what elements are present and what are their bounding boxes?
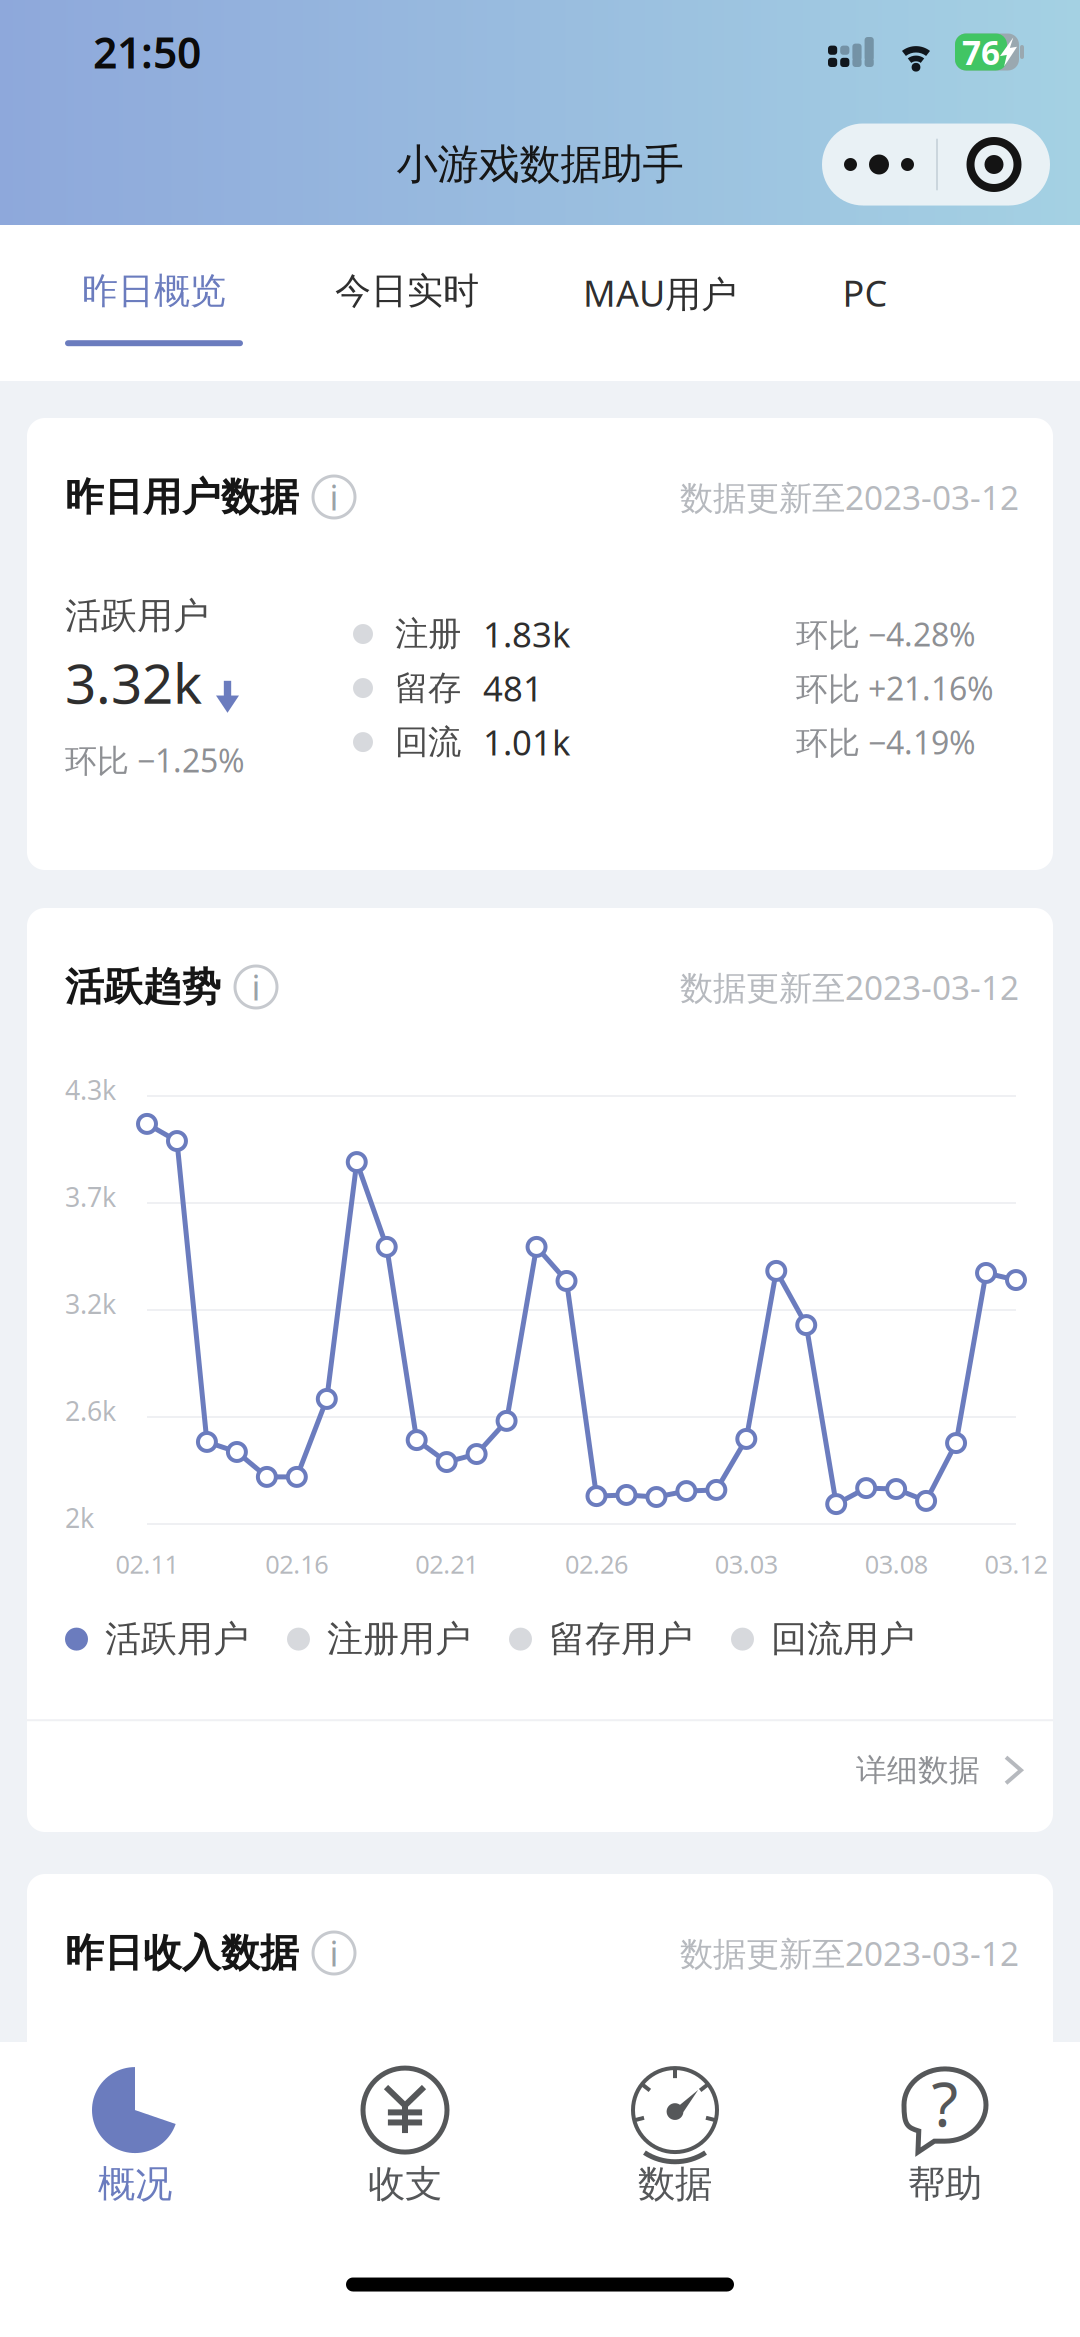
staticText: 1.83k [483, 611, 571, 657]
staticText: 小游戏数据助手 [396, 139, 683, 190]
staticText: 2k [65, 1500, 94, 1535]
staticText: 回流 [395, 722, 461, 762]
staticText: 03.03 [715, 1547, 778, 1581]
staticText: 数据更新至2023-03-12 [680, 475, 1019, 519]
staticText: 3.7k [65, 1179, 116, 1214]
staticText: 注册用户 [327, 1617, 471, 1661]
staticText: 留存用户 [549, 1617, 693, 1661]
staticText: 数据更新至2023-03-12 [680, 965, 1019, 1009]
staticText: 注册 [395, 613, 461, 654]
button[interactable]: 数据 [540, 2042, 810, 2232]
staticText: ? [931, 2062, 958, 2144]
button[interactable]: MAU用户 [587, 269, 733, 350]
staticText: 帮助 [908, 2161, 982, 2207]
button[interactable]: ? [810, 2042, 1080, 2232]
staticText: 昨日用户数据 [65, 473, 299, 521]
staticText: 02.21 [415, 1547, 478, 1581]
staticText: i [329, 474, 338, 520]
staticText: 今日实时 [335, 269, 479, 313]
staticText: 2.6k [65, 1393, 116, 1428]
staticText: i [329, 1930, 338, 1976]
staticText: 昨日收入数据 [65, 1929, 299, 1977]
staticText: 数据 [638, 2161, 712, 2207]
staticText: 详细数据 [856, 1751, 980, 1789]
staticText: 3.32k [65, 646, 202, 719]
staticText: 环比 +21.16% [796, 667, 994, 709]
staticText: 活跃用户 [65, 594, 209, 638]
staticText: 昨日概览 [82, 269, 226, 313]
staticText: PC [842, 269, 887, 317]
button[interactable]: 概况 [0, 2042, 270, 2232]
button[interactable]: Info [299, 1924, 369, 1982]
staticText: 收支 [368, 2161, 442, 2207]
button[interactable]: 详细数据 [27, 1721, 1053, 1819]
staticText: 4.3k [65, 1072, 116, 1107]
staticText: 3.2k [65, 1286, 116, 1321]
staticText: 回流用户 [771, 1617, 915, 1661]
staticText: 76 [962, 30, 1000, 74]
button[interactable]: PC [840, 269, 890, 350]
button[interactable]: Info [299, 468, 369, 526]
staticText: 概况 [98, 2161, 172, 2207]
staticText: 03.08 [865, 1547, 928, 1581]
staticText: i [251, 964, 260, 1010]
staticText: 02.11 [115, 1547, 178, 1581]
staticText: 02.26 [565, 1547, 628, 1581]
button[interactable]: 收支 [270, 2042, 540, 2232]
staticText: 03.12 [984, 1547, 1047, 1581]
button[interactable]: 今日实时 [334, 269, 480, 346]
staticText: 环比 −1.25% [65, 739, 245, 781]
staticText: 数据更新至2023-03-12 [680, 1931, 1019, 1975]
staticText: 02.16 [265, 1547, 328, 1581]
staticText: 活跃用户 [105, 1617, 249, 1661]
staticText: 活跃趋势 [65, 963, 221, 1011]
staticText: MAU用户 [583, 269, 737, 317]
staticText: 481 [483, 665, 543, 711]
button[interactable]: Info [221, 958, 291, 1016]
button[interactable]: Capsule menu [938, 123, 1050, 205]
button[interactable]: More [822, 123, 936, 205]
button[interactable]: 昨日概览 [81, 269, 227, 346]
staticText: 环比 −4.19% [796, 721, 976, 763]
staticText: 环比 −4.28% [796, 613, 976, 655]
staticText: 1.01k [483, 719, 571, 765]
staticText: 21:50 [93, 24, 201, 80]
staticText: 留存 [395, 668, 461, 708]
